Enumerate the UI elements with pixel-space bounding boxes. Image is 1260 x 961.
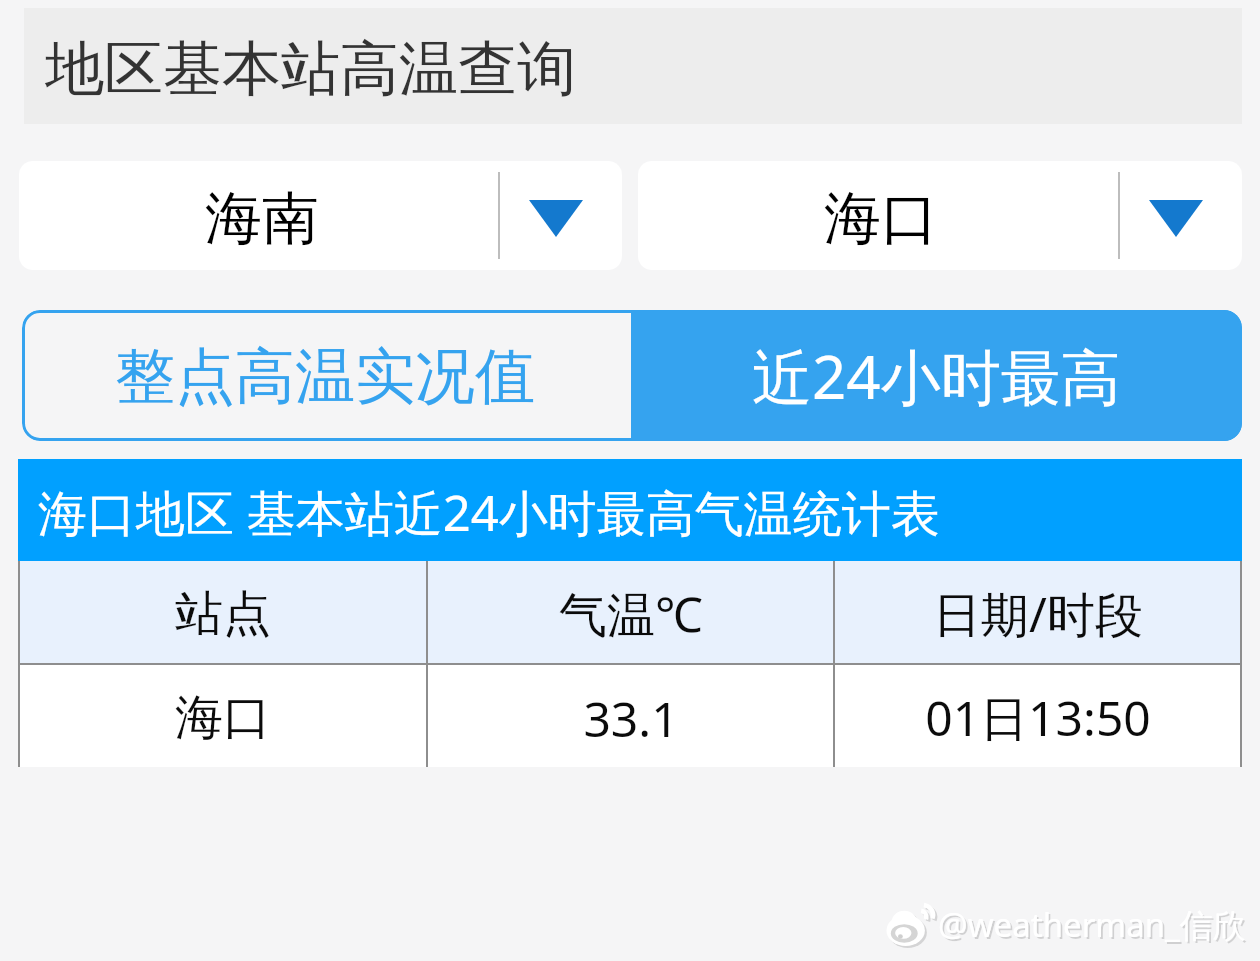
button[interactable]: 整点高温实况值 — [22, 310, 631, 441]
staticText: 33.1 — [583, 686, 679, 751]
staticText: 近24小时最高 — [752, 335, 1121, 417]
other: Open dropdown — [1149, 200, 1203, 237]
staticText: 站点 — [175, 584, 271, 644]
staticText: 日期/时段 — [933, 581, 1143, 647]
staticText: 海口地区 基本站近24小时最高气温统计表 — [38, 479, 940, 546]
button[interactable]: 海南 — [19, 161, 622, 270]
button[interactable]: 海口 — [18, 665, 1242, 767]
staticText: 气温℃ — [559, 581, 703, 647]
staticText: 海口 — [824, 183, 938, 255]
button[interactable]: 海口 — [638, 161, 1242, 270]
staticText: @weatherman_信欣 — [940, 904, 1248, 949]
staticText: 整点高温实况值 — [115, 339, 535, 415]
staticText: 地区基本站高温查询 — [45, 32, 576, 106]
other: Weibo — [886, 904, 934, 946]
other: Open dropdown — [529, 200, 583, 237]
staticText: 01日13:50 — [925, 685, 1151, 751]
button[interactable]: 近24小时最高 — [631, 310, 1242, 441]
staticText: 海南 — [205, 183, 319, 255]
staticText: 海口 — [175, 688, 271, 748]
staticText: @weatherman_信欣 — [938, 902, 1246, 947]
